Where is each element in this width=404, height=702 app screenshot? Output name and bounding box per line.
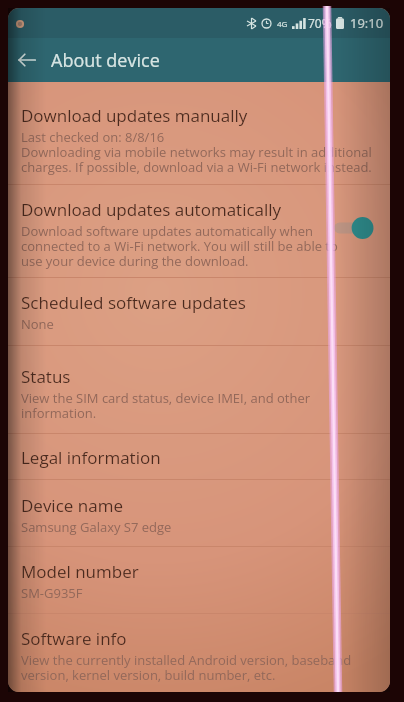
staticText: Device name	[21, 494, 123, 517]
button[interactable]: Download updates automatically	[8, 185, 390, 277]
staticText: Download updates automatically	[21, 198, 282, 221]
button[interactable]: Download updates manually	[8, 82, 390, 184]
button[interactable]: Status	[8, 346, 390, 433]
staticText: 4G	[277, 18, 288, 29]
staticText: View the SIM card status, device IMEI, a…	[21, 389, 311, 421]
button[interactable]: Scheduled software updates	[8, 278, 390, 345]
staticText: None	[21, 315, 54, 333]
staticText: Model number	[21, 560, 139, 583]
staticText: Download updates manually	[21, 104, 248, 127]
button[interactable]: Download updates automatically	[334, 215, 374, 241]
button[interactable]: Legal information	[8, 434, 390, 479]
staticText: Software info	[21, 627, 127, 650]
staticText: About device	[51, 48, 160, 73]
button[interactable]: Back	[8, 41, 46, 79]
staticText: View the currently installed Android ver…	[21, 651, 352, 683]
button[interactable]: Model number	[8, 547, 390, 613]
staticText: Scheduled software updates	[21, 291, 246, 314]
staticText: Last checked on: 8/8/16 Downloading via …	[21, 128, 372, 175]
button[interactable]: Software info	[8, 614, 390, 692]
staticText: 19:10	[350, 14, 384, 32]
button[interactable]: Device name	[8, 480, 390, 546]
staticText: SM-G935F	[21, 584, 83, 602]
staticText: Status	[21, 365, 71, 388]
staticText: 70%	[308, 15, 332, 31]
staticText: Legal information	[21, 446, 161, 469]
staticText: Samsung Galaxy S7 edge	[21, 518, 172, 536]
staticText: Download software updates automatically …	[21, 222, 338, 269]
